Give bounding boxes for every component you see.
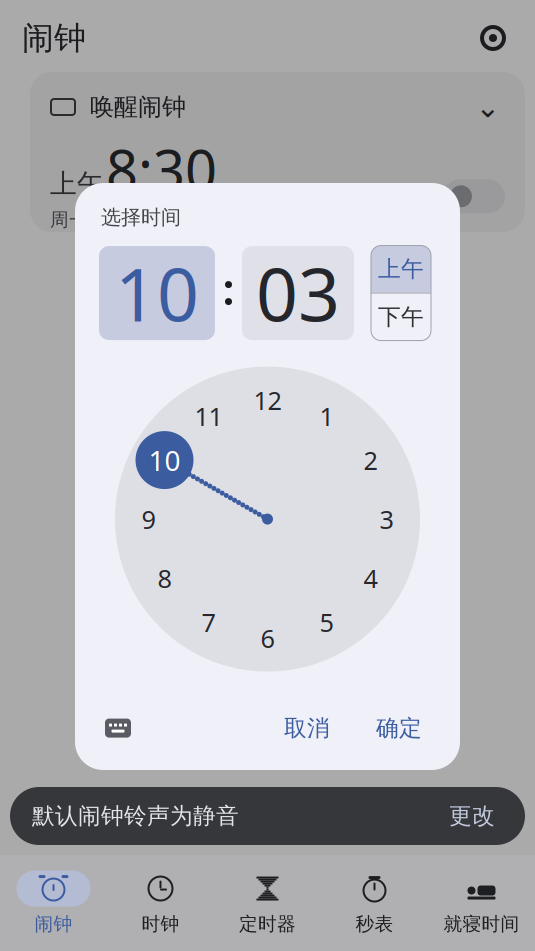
staticText: 9 — [141, 502, 155, 536]
staticText: ⌄ — [475, 90, 500, 124]
staticText: 2 — [363, 443, 377, 477]
staticText: 上午 — [378, 255, 424, 283]
staticText: 8 — [157, 561, 171, 595]
button[interactable]: 上午 — [371, 246, 431, 293]
button[interactable]: 秒表 — [321, 855, 428, 951]
button[interactable]: 取消 — [268, 704, 346, 752]
staticText: 更改 — [449, 802, 495, 830]
staticText: 秒表 — [355, 912, 393, 935]
button[interactable]: 切换到键盘输入 — [97, 708, 139, 748]
staticText: 周一、周二、周三 — [50, 208, 202, 231]
button[interactable]: 10 — [99, 246, 215, 340]
staticText: 03 — [256, 244, 340, 342]
staticText: 确定 — [376, 714, 422, 742]
button[interactable]: 更改 — [441, 796, 503, 836]
staticText: 6 — [260, 621, 274, 655]
button[interactable]: 展开 — [471, 92, 505, 122]
button[interactable]: 定时器 — [214, 855, 321, 951]
button[interactable]: 就寝时间 — [428, 855, 535, 951]
staticText: 3 — [379, 502, 393, 536]
staticText: 默认闹钟铃声为静音 — [32, 802, 239, 830]
staticText: 时钟 — [141, 912, 179, 935]
staticText: 就寝时间 — [443, 912, 519, 935]
staticText: 10 — [148, 441, 180, 479]
staticText: 定时器 — [239, 912, 296, 935]
staticText: 取消 — [284, 714, 330, 742]
staticText: 8:30 — [106, 132, 217, 206]
staticText: 12 — [253, 383, 281, 417]
button[interactable]: 确定 — [360, 704, 438, 752]
staticText: 7 — [201, 605, 215, 639]
staticText: 10 — [115, 244, 199, 342]
staticText: 4 — [363, 561, 377, 595]
staticText: 1 — [319, 399, 333, 433]
button[interactable]: 下午 — [371, 294, 431, 341]
staticText: 上午 — [50, 168, 104, 200]
button[interactable]: 闹钟 — [0, 855, 107, 951]
staticText: 下午 — [378, 303, 424, 331]
staticText: 11 — [194, 399, 222, 433]
staticText: 闹钟 — [34, 912, 72, 935]
button[interactable]: 设置 — [473, 18, 513, 58]
button[interactable]: 03 — [242, 246, 354, 340]
button[interactable]: 时钟 — [107, 855, 214, 951]
staticText: 5 — [319, 605, 333, 639]
staticText: 唤醒闹钟 — [90, 92, 186, 122]
staticText: 选择时间 — [101, 205, 181, 230]
staticText: 闹钟 — [22, 18, 86, 58]
